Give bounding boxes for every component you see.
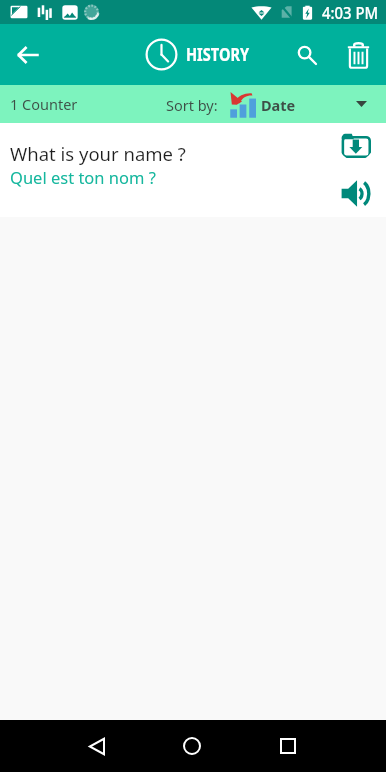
button[interactable]: Recents (264, 722, 312, 770)
button[interactable]: Back (5, 33, 49, 77)
button[interactable]: What is your name ? (0, 123, 386, 217)
button[interactable]: Back (72, 722, 120, 770)
button[interactable]: Home (168, 722, 216, 770)
button[interactable]: Save (339, 130, 373, 160)
button[interactable]: Delete all (334, 31, 382, 79)
staticText: Sort by: (166, 95, 218, 115)
staticText: What is your name ? (10, 141, 186, 166)
button[interactable]: Change sort (346, 89, 376, 119)
staticText: Date (261, 95, 296, 115)
staticText: Quel est ton nom ? (10, 166, 156, 188)
staticText: HISTORY (186, 43, 249, 66)
staticText: 1 Counter (10, 94, 78, 114)
button[interactable]: Date (230, 91, 296, 118)
staticText: 4:03 PM (322, 1, 379, 23)
button[interactable]: HISTORY (145, 38, 260, 71)
button[interactable]: Play sound (339, 178, 373, 208)
button[interactable]: Search (279, 31, 334, 79)
